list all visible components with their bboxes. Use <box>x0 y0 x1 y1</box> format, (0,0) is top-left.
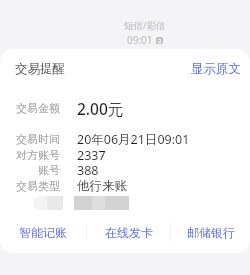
staticText: 388 <box>77 162 99 179</box>
staticText: 09:01 <box>127 33 153 47</box>
staticText: 2337 <box>77 147 106 164</box>
staticText: 交易提醒 <box>15 61 65 77</box>
staticText: 邮储银行 <box>187 225 235 240</box>
staticText: 交易时间 <box>16 132 60 146</box>
staticText: 显示原文 <box>191 61 241 77</box>
staticText: 20年06月21日09:01 <box>77 131 190 148</box>
staticText: 账号 <box>38 163 60 177</box>
staticText: 短信/彩信 <box>124 19 166 32</box>
staticText: 在线发卡 <box>105 225 153 240</box>
staticText: 智能记账 <box>19 225 67 240</box>
staticText: 2.00元 <box>77 98 124 119</box>
button[interactable]: 智能记账 <box>0 215 86 249</box>
staticText: 对方账号 <box>16 148 60 162</box>
button[interactable]: 显示原文 <box>191 61 241 77</box>
button[interactable]: 邮储银行 <box>171 215 250 249</box>
staticText: 交易类型 <box>16 179 60 193</box>
staticText: 交易金额 <box>16 101 60 115</box>
button[interactable]: 在线发卡 <box>87 215 170 249</box>
staticText: 2 <box>158 37 162 44</box>
staticText: 他行来账 <box>77 178 127 194</box>
